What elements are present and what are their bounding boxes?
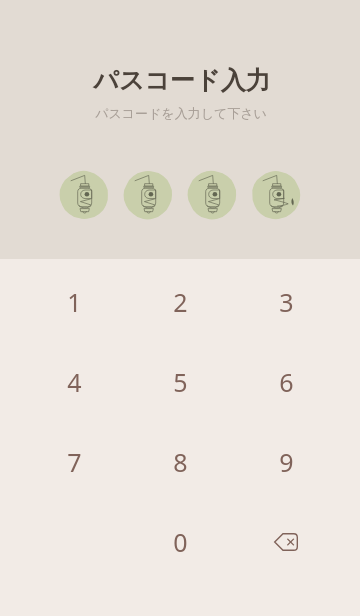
staticText: 0 bbox=[173, 525, 188, 559]
button[interactable]: 8 bbox=[127, 422, 233, 502]
button[interactable]: 3 bbox=[233, 262, 339, 342]
staticText: パスコード入力 bbox=[93, 65, 271, 96]
button[interactable]: 6 bbox=[233, 342, 339, 422]
staticText: 9 bbox=[279, 445, 294, 479]
button[interactable]: 9 bbox=[233, 422, 339, 502]
button[interactable]: 1 bbox=[21, 262, 127, 342]
staticText: 5 bbox=[173, 365, 188, 399]
button[interactable]: 5 bbox=[127, 342, 233, 422]
button[interactable]: Delete bbox=[233, 502, 339, 582]
staticText: 7 bbox=[67, 445, 82, 479]
staticText: 6 bbox=[279, 365, 294, 399]
staticText: 2 bbox=[173, 285, 188, 319]
button[interactable]: 0 bbox=[127, 502, 233, 582]
staticText: 3 bbox=[279, 285, 294, 319]
button[interactable]: 4 bbox=[21, 342, 127, 422]
staticText: 8 bbox=[173, 445, 188, 479]
staticText: 1 bbox=[67, 285, 82, 319]
staticText: パスコードを入力して下さい bbox=[95, 105, 267, 121]
button[interactable]: 7 bbox=[21, 422, 127, 502]
staticText: 4 bbox=[67, 365, 82, 399]
button[interactable]: 2 bbox=[127, 262, 233, 342]
